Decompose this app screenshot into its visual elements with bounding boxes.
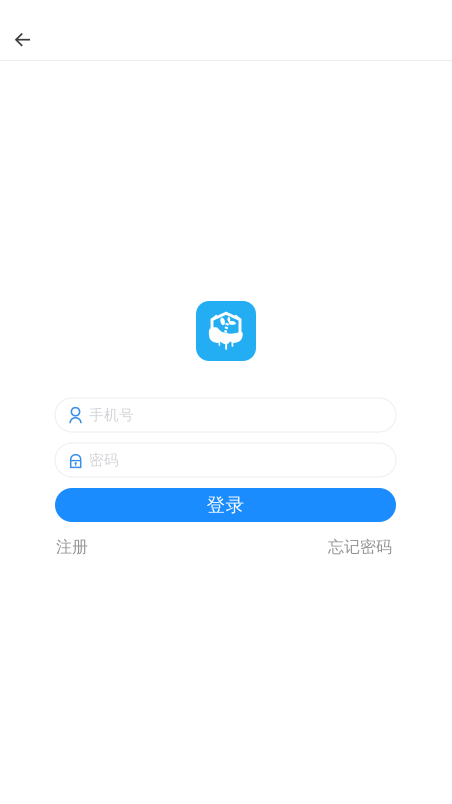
button[interactable]: 忘记密码 <box>328 537 392 557</box>
staticText: 注册 <box>56 537 88 557</box>
button[interactable]: 登录 <box>55 488 396 522</box>
button[interactable]: Back <box>0 0 45 62</box>
staticText: 忘记密码 <box>328 537 392 557</box>
staticText: 手机号 <box>89 406 134 424</box>
staticText: 密码 <box>89 451 119 469</box>
button[interactable]: 注册 <box>56 537 88 557</box>
staticText: 登录 <box>206 493 244 516</box>
